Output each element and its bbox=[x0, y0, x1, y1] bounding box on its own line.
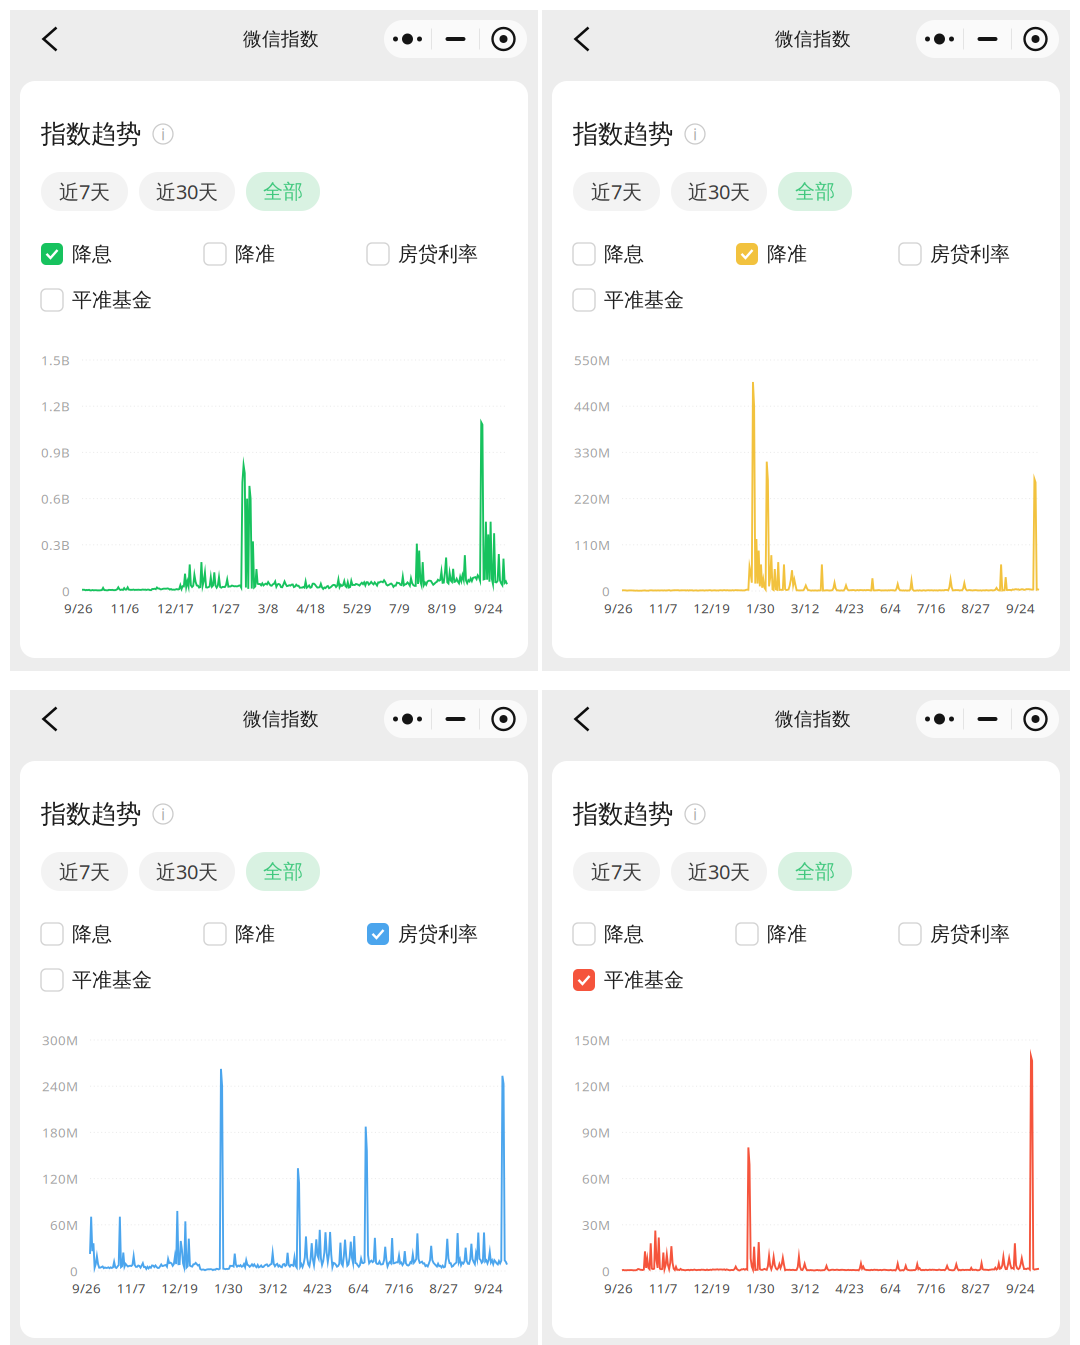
staticText: 房贷利率 bbox=[930, 922, 1010, 946]
staticText: 120M bbox=[574, 1077, 610, 1095]
staticText: 平准基金 bbox=[72, 288, 152, 312]
button[interactable]: 平准基金 bbox=[573, 967, 684, 993]
staticText: 0 bbox=[70, 1262, 78, 1280]
button[interactable]: About index trend bbox=[685, 124, 705, 144]
staticText: 9/26 bbox=[72, 1279, 101, 1297]
button[interactable]: Back bbox=[559, 695, 605, 743]
staticText: 降息 bbox=[72, 242, 112, 266]
button[interactable]: 近30天 bbox=[139, 852, 235, 891]
staticText: 房贷利率 bbox=[398, 922, 478, 946]
button[interactable]: 降准 bbox=[204, 241, 275, 267]
staticText: 11/7 bbox=[649, 599, 678, 617]
button[interactable]: 降息 bbox=[41, 921, 112, 947]
button[interactable]: 近30天 bbox=[671, 852, 767, 891]
button[interactable]: Back bbox=[559, 15, 605, 63]
button[interactable]: About index trend bbox=[153, 124, 173, 144]
button[interactable]: Close bbox=[480, 20, 527, 58]
staticText: 550M bbox=[574, 351, 610, 369]
staticText: 12/19 bbox=[693, 1279, 730, 1297]
staticText: 7/16 bbox=[385, 1279, 414, 1297]
button[interactable]: 全部 bbox=[778, 852, 852, 891]
button[interactable]: 降息 bbox=[573, 921, 644, 947]
staticText: 11/7 bbox=[117, 1279, 146, 1297]
staticText: 指数趋势 bbox=[41, 118, 141, 149]
button[interactable]: More bbox=[384, 700, 431, 738]
staticText: 近30天 bbox=[156, 178, 218, 205]
button[interactable]: 降息 bbox=[573, 241, 644, 267]
staticText: i bbox=[161, 803, 165, 825]
button[interactable]: Close bbox=[1012, 20, 1059, 58]
button[interactable]: 降准 bbox=[736, 921, 807, 947]
staticText: 3/12 bbox=[791, 599, 820, 617]
staticText: 降准 bbox=[767, 242, 807, 266]
button[interactable]: 降准 bbox=[736, 241, 807, 267]
staticText: 4/23 bbox=[303, 1279, 332, 1297]
button[interactable]: About index trend bbox=[153, 804, 173, 824]
staticText: 1.5B bbox=[41, 351, 70, 369]
staticText: 指数趋势 bbox=[573, 798, 673, 829]
button[interactable]: 平准基金 bbox=[573, 287, 684, 313]
staticText: 3/12 bbox=[791, 1279, 820, 1297]
button[interactable]: Close bbox=[1012, 700, 1059, 738]
staticText: 指数趋势 bbox=[573, 118, 673, 149]
staticText: 6/4 bbox=[880, 599, 901, 617]
staticText: 微信指数 bbox=[243, 27, 319, 50]
staticText: i bbox=[693, 803, 697, 825]
staticText: 9/24 bbox=[474, 599, 503, 617]
button[interactable]: 近30天 bbox=[671, 172, 767, 211]
button[interactable]: 平准基金 bbox=[41, 967, 152, 993]
button[interactable]: 全部 bbox=[778, 172, 852, 211]
button[interactable]: 房贷利率 bbox=[367, 241, 478, 267]
staticText: 1/27 bbox=[211, 599, 240, 617]
staticText: 110M bbox=[574, 536, 610, 554]
staticText: 6/4 bbox=[348, 1279, 369, 1297]
staticText: 1/30 bbox=[746, 599, 775, 617]
button[interactable]: Minimize bbox=[964, 700, 1011, 738]
staticText: 近7天 bbox=[59, 858, 110, 885]
button[interactable]: More bbox=[916, 700, 963, 738]
staticText: 60M bbox=[582, 1170, 610, 1187]
staticText: 降准 bbox=[235, 242, 275, 266]
button[interactable]: 平准基金 bbox=[41, 287, 152, 313]
button[interactable]: 降息 bbox=[41, 241, 112, 267]
staticText: i bbox=[161, 123, 165, 145]
button[interactable]: 房贷利率 bbox=[367, 921, 478, 947]
button[interactable]: 近30天 bbox=[139, 172, 235, 211]
button[interactable]: Minimize bbox=[964, 20, 1011, 58]
button[interactable]: Minimize bbox=[432, 20, 479, 58]
button[interactable]: More bbox=[384, 20, 431, 58]
staticText: 7/16 bbox=[917, 1279, 946, 1297]
button[interactable]: 近7天 bbox=[41, 172, 128, 211]
staticText: 60M bbox=[50, 1216, 78, 1234]
button[interactable]: 房贷利率 bbox=[899, 241, 1010, 267]
button[interactable]: About index trend bbox=[685, 804, 705, 824]
button[interactable]: More bbox=[916, 20, 963, 58]
button[interactable]: Back bbox=[27, 695, 73, 743]
button[interactable]: Close bbox=[480, 700, 527, 738]
staticText: 9/24 bbox=[1006, 1279, 1035, 1297]
staticText: 0 bbox=[62, 582, 70, 600]
staticText: 平准基金 bbox=[72, 968, 152, 992]
button[interactable]: 房贷利率 bbox=[899, 921, 1010, 947]
button[interactable]: Minimize bbox=[432, 700, 479, 738]
button[interactable]: Back bbox=[27, 15, 73, 63]
staticText: 房贷利率 bbox=[398, 242, 478, 266]
staticText: 7/16 bbox=[917, 599, 946, 617]
staticText: 降息 bbox=[604, 922, 644, 946]
staticText: 30M bbox=[582, 1216, 610, 1234]
staticText: 降准 bbox=[235, 922, 275, 946]
staticText: 4/23 bbox=[835, 599, 864, 617]
staticText: 120M bbox=[42, 1170, 78, 1187]
staticText: 降息 bbox=[604, 242, 644, 266]
button[interactable]: 降准 bbox=[204, 921, 275, 947]
staticText: 8/27 bbox=[429, 1279, 458, 1297]
button[interactable]: 近7天 bbox=[573, 852, 660, 891]
staticText: 房贷利率 bbox=[930, 242, 1010, 266]
button[interactable]: 全部 bbox=[246, 852, 320, 891]
button[interactable]: 近7天 bbox=[41, 852, 128, 891]
staticText: 3/8 bbox=[258, 599, 279, 617]
button[interactable]: 近7天 bbox=[573, 172, 660, 211]
staticText: 0 bbox=[602, 582, 610, 600]
staticText: 0.9B bbox=[41, 443, 70, 461]
button[interactable]: 全部 bbox=[246, 172, 320, 211]
